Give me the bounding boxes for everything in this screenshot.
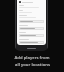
button[interactable]: List item <box>19 1 44 3</box>
staticText: all your locations <box>15 62 50 68</box>
button[interactable]: Input field <box>19 20 44 23</box>
staticText: Add players from <box>14 55 50 61</box>
button[interactable]: Input field <box>19 34 44 37</box>
button[interactable]: Input field <box>19 27 44 30</box>
button[interactable]: Input field <box>19 41 44 44</box>
button[interactable]: List item <box>15 0 48 51</box>
